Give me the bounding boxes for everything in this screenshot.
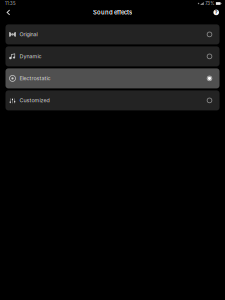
button[interactable]: Dynamic: [5, 46, 219, 66]
button[interactable]: Help: [211, 7, 221, 18]
staticText: Original: [20, 31, 38, 38]
button[interactable]: Original: [5, 24, 219, 44]
staticText: Dynamic: [20, 53, 42, 60]
staticText: ?: [215, 9, 218, 15]
staticText: Electrostatic: [20, 75, 51, 82]
button[interactable]: Customized: [5, 90, 219, 110]
staticText: Customized: [20, 97, 50, 104]
button[interactable]: Back: [3, 7, 13, 18]
staticText: 11:35: [5, 1, 16, 6]
staticText: Sound effects: [93, 9, 132, 16]
button[interactable]: Electrostatic: [5, 68, 219, 88]
staticText: 73%: [205, 1, 214, 6]
